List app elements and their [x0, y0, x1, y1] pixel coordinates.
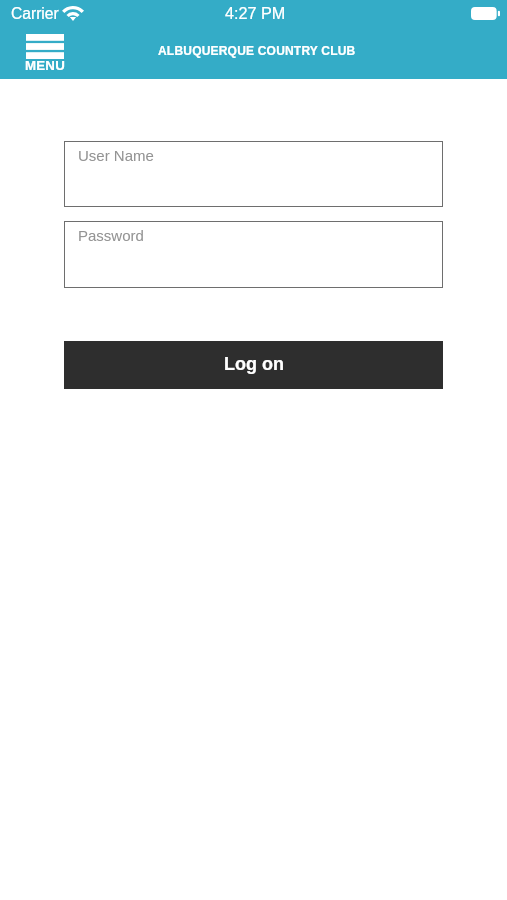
staticText: 4:27 PM — [225, 4, 286, 22]
button[interactable]: User Name — [64, 141, 443, 207]
button[interactable]: Menu — [25, 34, 65, 74]
staticText: MENU — [25, 58, 65, 73]
staticText: Password — [78, 227, 144, 244]
button[interactable]: Log on — [64, 341, 443, 389]
staticText: Log on — [224, 354, 284, 374]
staticText: Carrier — [11, 5, 59, 22]
staticText: User Name — [78, 147, 154, 164]
staticText: ALBUQUERQUE COUNTRY CLUB — [158, 44, 356, 57]
button[interactable]: Password — [64, 221, 443, 288]
